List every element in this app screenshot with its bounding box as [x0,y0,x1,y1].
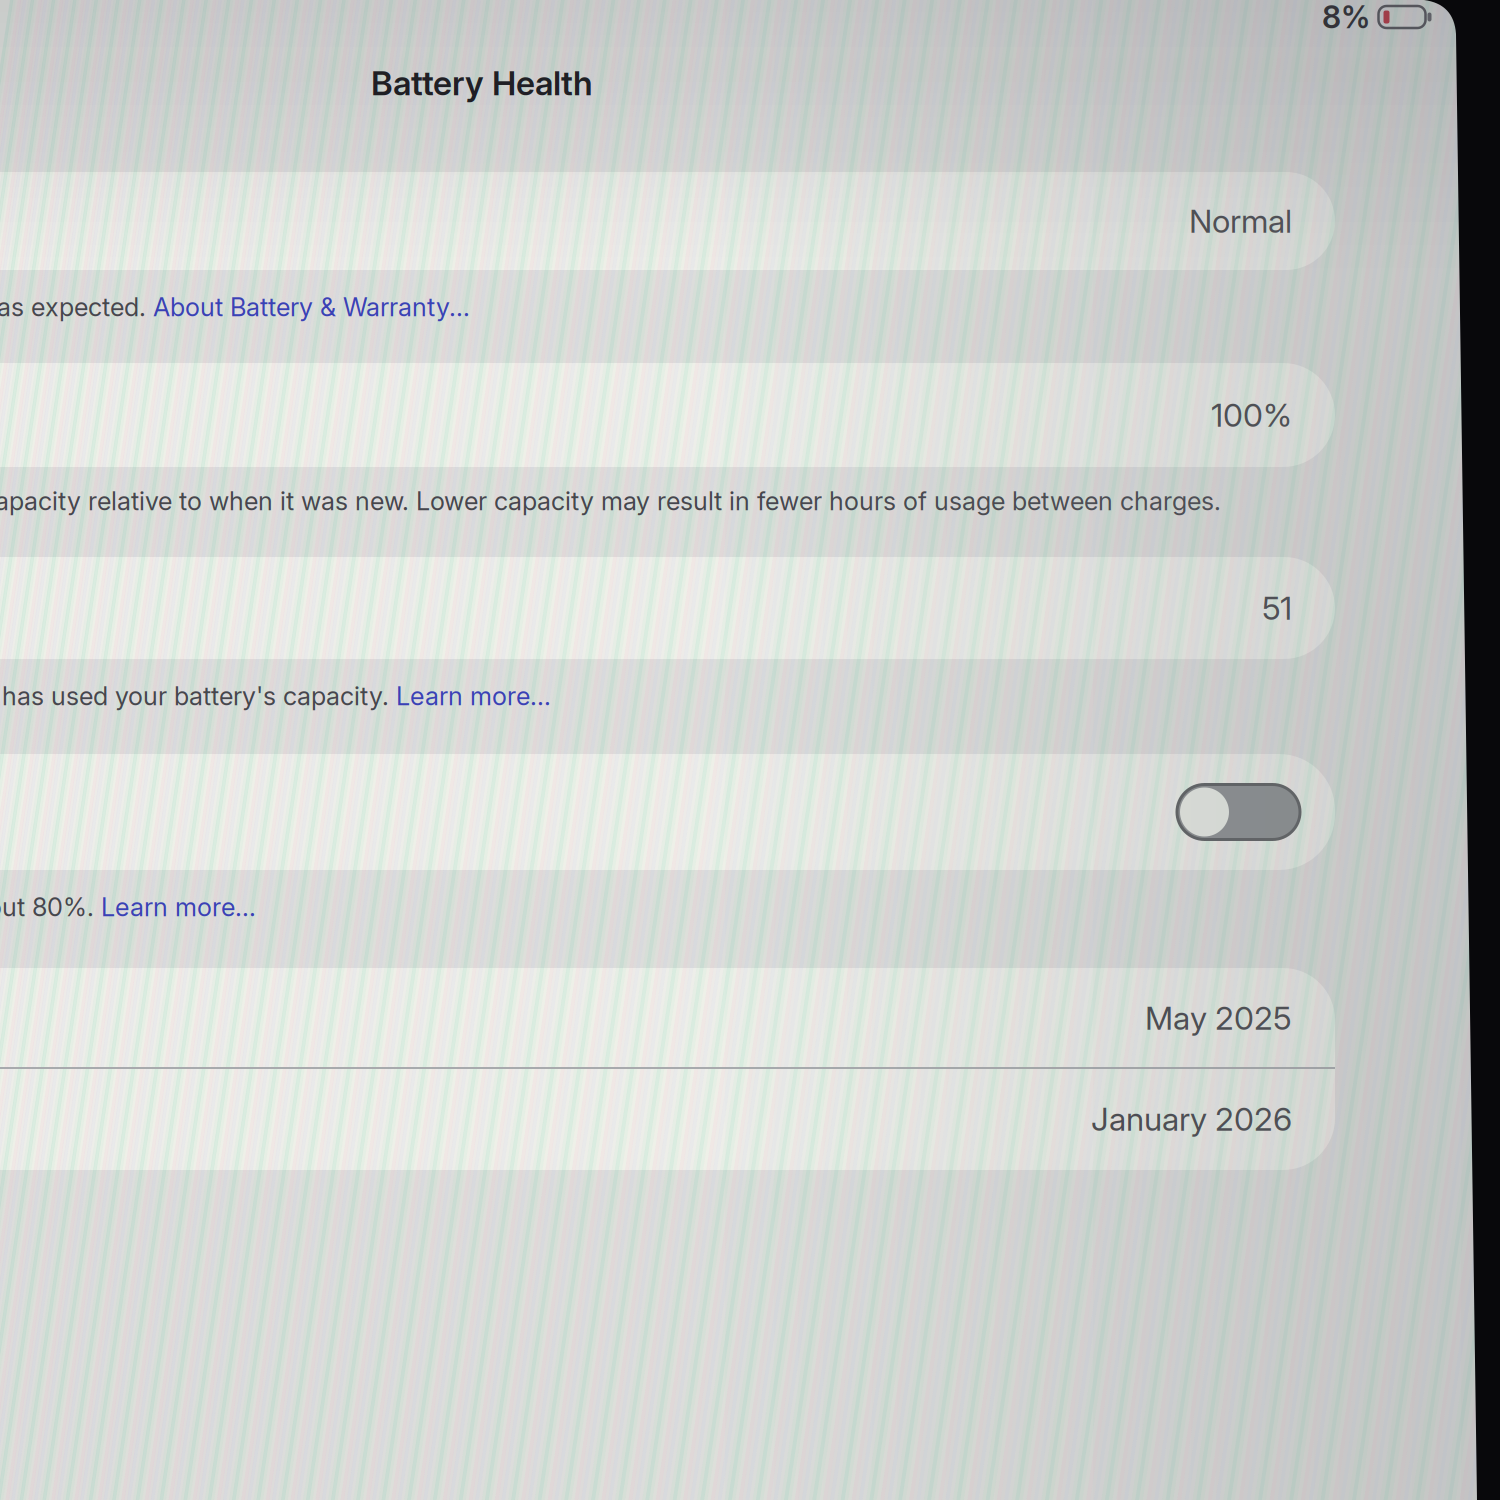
staticText: January 2026 [1091,1100,1292,1138]
staticText: To reduce battery ageing, iPhone learns … [0,892,101,922]
staticText: Learn more... [101,892,256,922]
staticText: Your battery is performing as expected. [0,292,153,322]
staticText: Normal [1189,202,1292,240]
staticText: This is a measure of battery capacity re… [0,486,1221,516]
staticText: Learn more... [396,681,551,711]
staticText: Battery Health [371,63,593,103]
button[interactable]: Battery Health [0,172,1335,270]
staticText: A cycle count reflects how much you has … [0,681,396,711]
staticText: May 2025 [1145,999,1292,1037]
button[interactable]: First Use [0,1068,1335,1170]
button[interactable]: About Battery & Warranty... [153,292,470,322]
staticText: About Battery & Warranty... [153,292,470,322]
button[interactable]: Learn more... [101,892,256,922]
button[interactable]: Learn more... [396,681,551,711]
button[interactable]: Manufacture Date [0,968,1335,1068]
button[interactable]: Optimized Battery Charging [0,754,1335,870]
button[interactable]: Cycle Count [0,557,1335,659]
staticText: 8% [1322,0,1370,35]
staticText: 100% [1211,396,1292,434]
button[interactable]: Maximum Capacity [0,363,1335,467]
staticText: 51 [1262,589,1292,627]
